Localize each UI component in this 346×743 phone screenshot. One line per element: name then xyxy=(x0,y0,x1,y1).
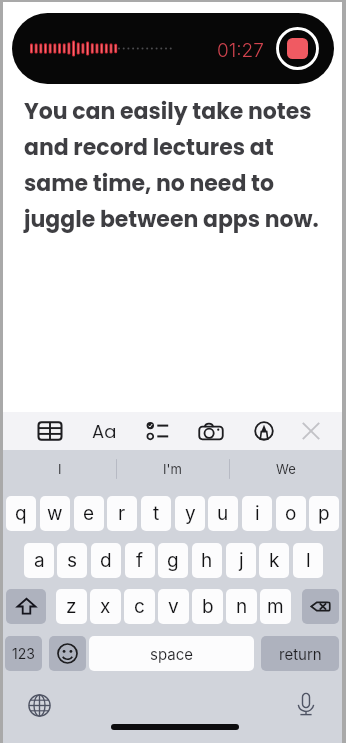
staticText: p xyxy=(318,502,330,525)
staticText: 01:27 xyxy=(217,39,264,62)
staticText: d xyxy=(100,549,112,572)
staticText: g xyxy=(167,549,179,572)
button[interactable]: w xyxy=(40,496,70,531)
button[interactable]: 01:27 xyxy=(12,13,334,84)
staticText: m xyxy=(267,595,284,618)
button[interactable]: Checklist xyxy=(138,412,176,450)
button[interactable]: y xyxy=(175,496,205,531)
button[interactable]: Text format xyxy=(85,412,123,450)
button[interactable]: c xyxy=(124,589,155,624)
staticText: e xyxy=(83,502,95,525)
staticText: You can easily take notes and record lec… xyxy=(24,96,326,235)
staticText: x xyxy=(100,595,111,618)
button[interactable]: p xyxy=(309,496,339,531)
staticText: n xyxy=(236,595,248,618)
button[interactable]: z xyxy=(56,589,87,624)
button[interactable]: Dictation xyxy=(290,688,322,720)
staticText: 123 xyxy=(12,645,35,662)
button[interactable]: Stop recording xyxy=(276,27,319,70)
button[interactable]: Close xyxy=(292,412,330,450)
button[interactable]: Shift xyxy=(6,589,46,624)
staticText: w xyxy=(47,502,63,525)
staticText: c xyxy=(134,595,145,618)
staticText: return xyxy=(279,645,322,663)
button[interactable]: e xyxy=(74,496,104,531)
button[interactable]: Backspace xyxy=(302,589,339,624)
staticText: I'm xyxy=(163,461,182,477)
button[interactable]: q xyxy=(6,496,36,531)
button[interactable]: return xyxy=(261,636,339,671)
staticText: k xyxy=(269,549,280,572)
button[interactable]: x xyxy=(90,589,121,624)
button[interactable]: o xyxy=(276,496,306,531)
button[interactable]: b xyxy=(192,589,223,624)
staticText: t xyxy=(153,502,160,525)
button[interactable]: u xyxy=(208,496,238,531)
button[interactable]: g xyxy=(158,543,188,578)
staticText: z xyxy=(66,595,77,618)
staticText: j xyxy=(239,549,244,572)
button[interactable]: Change keyboard xyxy=(23,689,55,721)
button[interactable]: Markup xyxy=(245,412,283,450)
staticText: h xyxy=(201,549,213,572)
button[interactable]: Emoji xyxy=(49,636,86,671)
staticText: We xyxy=(276,461,296,477)
staticText: f xyxy=(136,549,144,572)
staticText: y xyxy=(185,502,196,525)
button[interactable]: d xyxy=(91,543,121,578)
button[interactable]: I xyxy=(3,450,116,488)
button[interactable]: Table xyxy=(31,412,69,450)
button[interactable]: m xyxy=(260,589,291,624)
button[interactable]: n xyxy=(226,589,257,624)
button[interactable]: I'm xyxy=(116,450,229,488)
staticText: space xyxy=(150,645,193,663)
button[interactable]: f xyxy=(125,543,155,578)
staticText: s xyxy=(67,549,78,572)
button[interactable]: i xyxy=(242,496,272,531)
staticText: l xyxy=(306,549,311,572)
button[interactable]: k xyxy=(259,543,289,578)
button[interactable]: 123 xyxy=(5,636,42,671)
button[interactable]: Camera xyxy=(192,412,230,450)
staticText: i xyxy=(255,502,260,525)
staticText: q xyxy=(15,502,27,525)
button[interactable]: We xyxy=(229,450,342,488)
staticText: I xyxy=(58,461,62,477)
staticText: r xyxy=(118,502,126,525)
staticText: u xyxy=(217,502,229,525)
staticText: b xyxy=(202,595,214,618)
button[interactable]: t xyxy=(141,496,171,531)
button[interactable]: a xyxy=(24,543,54,578)
button[interactable]: j xyxy=(226,543,256,578)
staticText: v xyxy=(168,595,179,618)
staticText: o xyxy=(285,502,297,525)
staticText: Aa xyxy=(92,419,117,444)
button[interactable]: v xyxy=(158,589,189,624)
staticText: a xyxy=(34,549,45,572)
button[interactable]: r xyxy=(107,496,137,531)
button[interactable]: s xyxy=(57,543,87,578)
button[interactable]: h xyxy=(192,543,222,578)
button[interactable]: space xyxy=(89,636,254,671)
button[interactable]: l xyxy=(293,543,323,578)
